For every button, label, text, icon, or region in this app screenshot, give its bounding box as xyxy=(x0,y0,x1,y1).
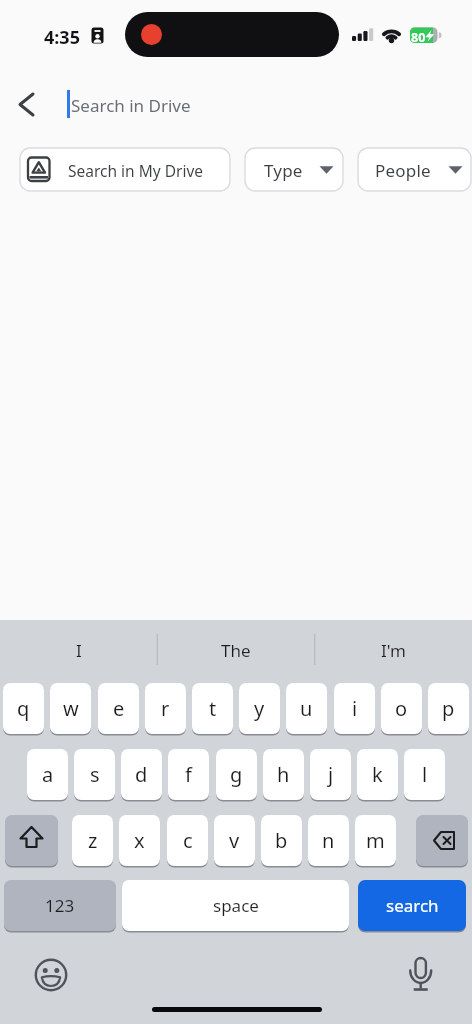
button[interactable]: c xyxy=(167,815,208,866)
staticText: Search in My Drive xyxy=(68,160,204,181)
staticText: z xyxy=(88,827,98,854)
staticText: u xyxy=(300,695,313,722)
staticText: l xyxy=(422,761,428,788)
staticText: g xyxy=(230,761,243,788)
button[interactable]: o xyxy=(381,683,422,734)
staticText: 80 xyxy=(411,29,426,46)
button[interactable]: v xyxy=(214,815,255,866)
staticText: h xyxy=(277,761,290,788)
staticText: d xyxy=(135,761,148,788)
button[interactable]: t xyxy=(192,683,233,734)
button[interactable]: i xyxy=(334,683,375,734)
button[interactable] xyxy=(10,90,44,120)
button[interactable]: r xyxy=(145,683,186,734)
staticText: 123 xyxy=(45,894,75,917)
staticText: t xyxy=(209,695,217,722)
button[interactable]: I'm xyxy=(314,620,472,680)
button[interactable]: e xyxy=(98,683,139,734)
button[interactable]: n xyxy=(308,815,349,866)
button[interactable]: space xyxy=(122,880,349,931)
button[interactable]: The xyxy=(157,620,314,680)
staticText: e xyxy=(113,695,125,722)
staticText: Search in Drive xyxy=(71,94,191,117)
staticText: space xyxy=(213,894,259,917)
staticText: x xyxy=(134,827,145,854)
button[interactable]: f xyxy=(168,749,209,800)
staticText: m xyxy=(366,827,385,854)
button[interactable]: w xyxy=(50,683,91,734)
button[interactable]: m xyxy=(355,815,396,866)
button[interactable]: x xyxy=(119,815,160,866)
button[interactable]: Search in My Drive xyxy=(20,148,230,191)
button[interactable]: q xyxy=(3,683,44,734)
staticText: c xyxy=(183,827,193,854)
button[interactable]: z xyxy=(72,815,113,866)
button[interactable]: s xyxy=(74,749,115,800)
staticText: p xyxy=(442,695,455,722)
staticText: r xyxy=(161,695,170,722)
staticText: 4:35 xyxy=(44,25,80,50)
staticText: People xyxy=(375,159,431,182)
button[interactable]: p xyxy=(428,683,469,734)
staticText: i xyxy=(352,695,358,722)
button[interactable]: u xyxy=(286,683,327,734)
staticText: w xyxy=(63,695,79,722)
staticText: I xyxy=(76,639,82,662)
staticText: q xyxy=(17,695,30,722)
staticText: a xyxy=(42,761,54,788)
staticText: y xyxy=(254,695,265,722)
button[interactable]: d xyxy=(121,749,162,800)
button[interactable]: a xyxy=(27,749,68,800)
button[interactable]: y xyxy=(239,683,280,734)
button[interactable]: j xyxy=(310,749,351,800)
button[interactable]: k xyxy=(357,749,398,800)
button[interactable]: search xyxy=(358,880,466,931)
staticText: n xyxy=(322,827,335,854)
button[interactable] xyxy=(416,815,468,866)
button[interactable]: I xyxy=(0,620,157,680)
staticText: search xyxy=(386,894,439,917)
staticText: v xyxy=(229,827,240,854)
staticText: Type xyxy=(264,159,303,182)
staticText: I'm xyxy=(381,639,406,662)
button[interactable]: h xyxy=(263,749,304,800)
button[interactable]: People xyxy=(358,148,471,191)
staticText: s xyxy=(90,761,100,788)
staticText: The xyxy=(221,639,251,662)
button[interactable] xyxy=(33,957,69,993)
button[interactable]: 123 xyxy=(4,880,116,931)
staticText: k xyxy=(372,761,383,788)
button[interactable] xyxy=(5,815,58,866)
button[interactable]: b xyxy=(261,815,302,866)
staticText: o xyxy=(395,695,408,722)
staticText: j xyxy=(328,761,334,788)
button[interactable]: g xyxy=(216,749,257,800)
button[interactable]: l xyxy=(404,749,445,800)
button[interactable] xyxy=(403,955,439,995)
staticText: f xyxy=(185,761,192,788)
staticText: b xyxy=(275,827,288,854)
button[interactable]: Type xyxy=(245,148,343,191)
